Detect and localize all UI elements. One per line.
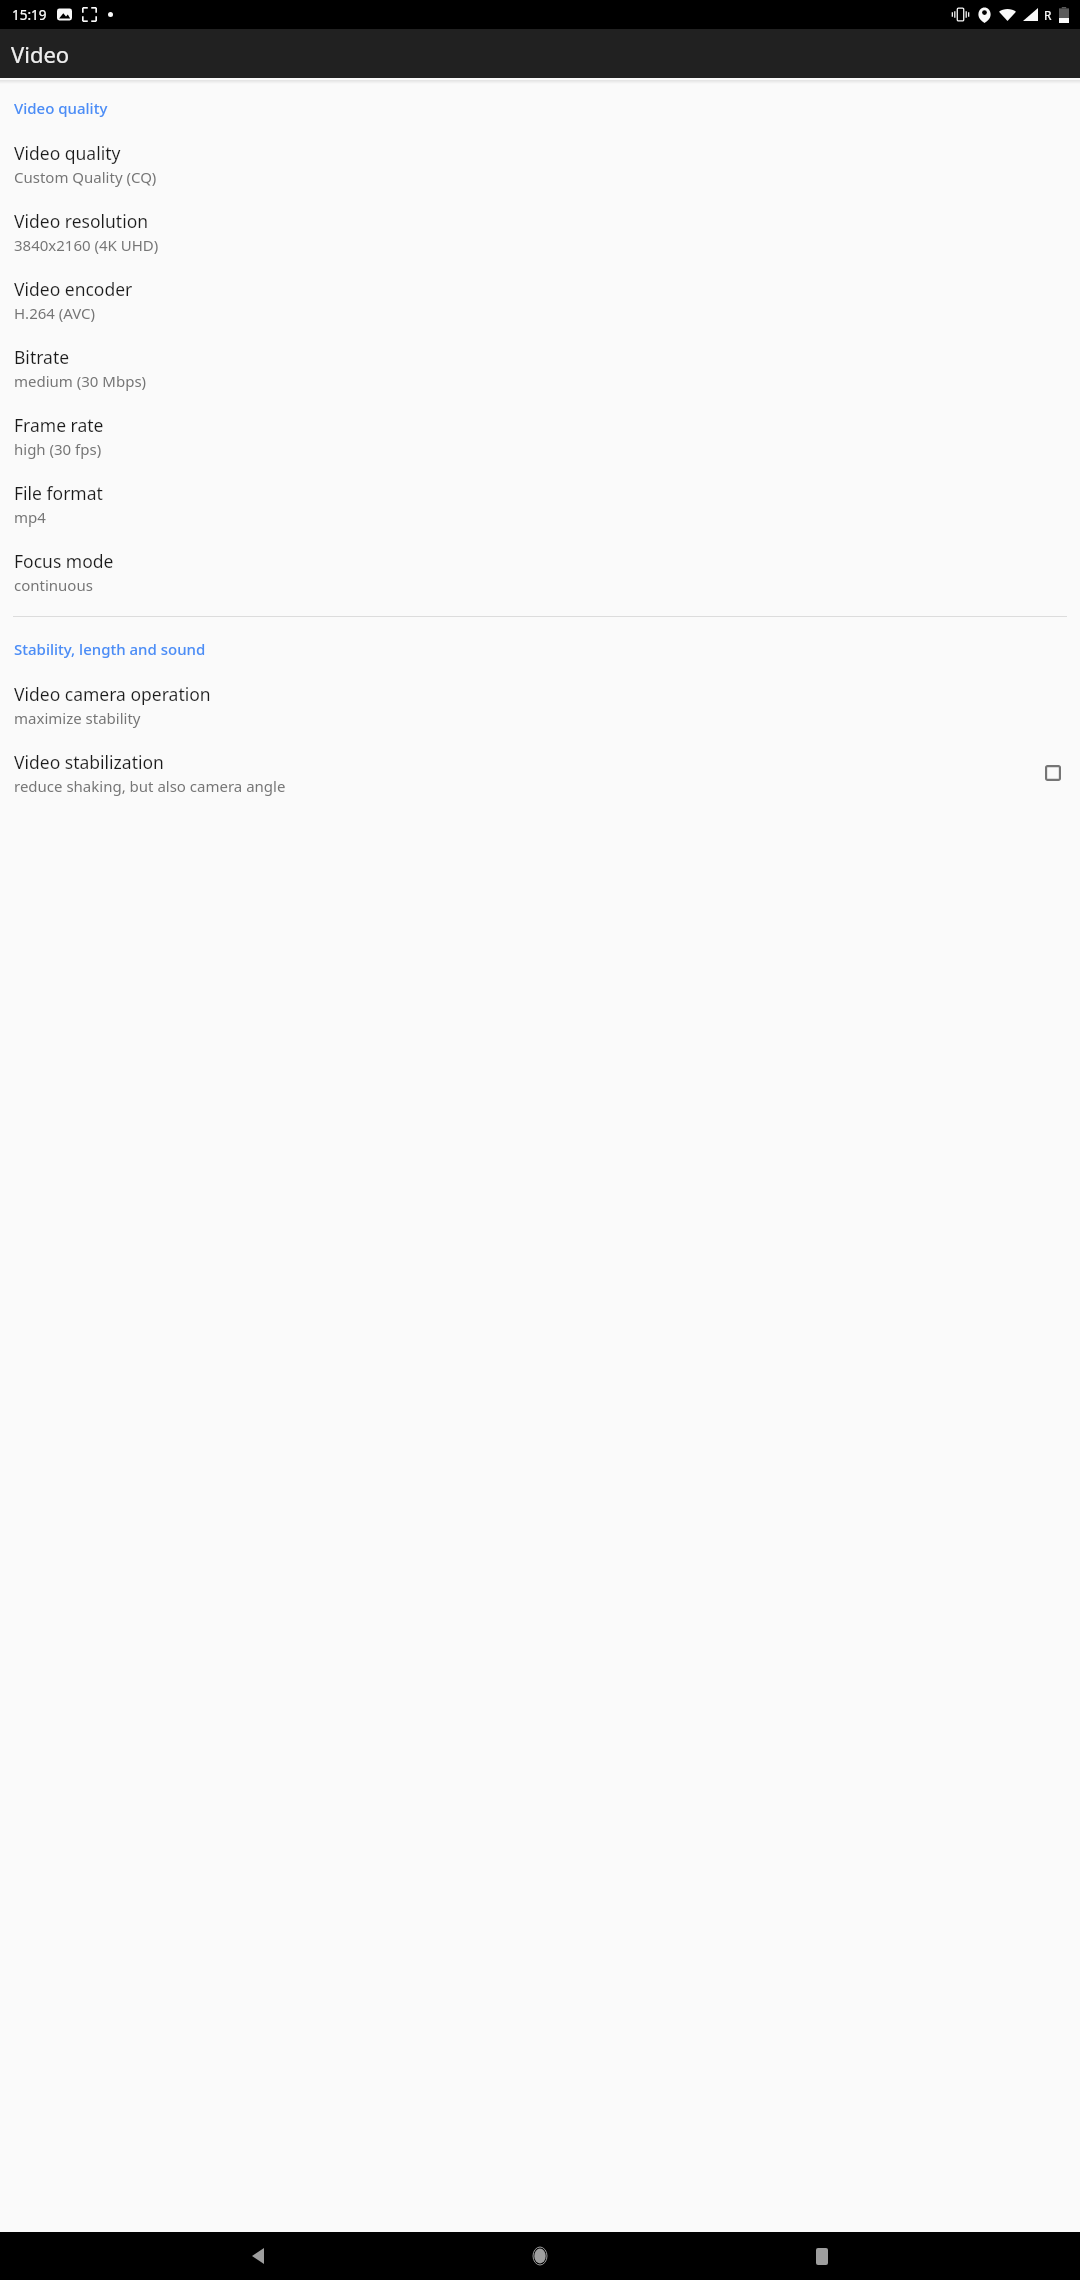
- staticText: Video encoder: [14, 277, 133, 301]
- button[interactable]: Bitrate: [0, 334, 1080, 402]
- staticText: Video quality: [14, 98, 108, 118]
- other: Video stabilization checkbox: [1040, 760, 1066, 786]
- staticText: Frame rate: [14, 413, 104, 437]
- staticText: Custom Quality (CQ): [14, 167, 157, 187]
- staticText: Stability, length and sound: [14, 639, 206, 659]
- button[interactable]: Recents: [798, 2232, 846, 2280]
- staticText: Video resolution: [14, 209, 149, 233]
- button[interactable]: Video resolution: [0, 198, 1080, 266]
- staticText: 15:19: [12, 6, 47, 24]
- staticText: mp4: [14, 507, 46, 527]
- staticText: Video: [11, 39, 70, 69]
- button[interactable]: Video quality: [0, 130, 1080, 198]
- staticText: R: [1044, 7, 1052, 23]
- button[interactable]: Frame rate: [0, 402, 1080, 470]
- staticText: Video quality: [14, 141, 121, 165]
- staticText: File format: [14, 481, 103, 505]
- button[interactable]: Video encoder: [0, 266, 1080, 334]
- staticText: Focus mode: [14, 549, 114, 573]
- button[interactable]: File format: [0, 470, 1080, 538]
- staticText: maximize stability: [14, 708, 141, 728]
- staticText: medium (30 Mbps): [14, 371, 147, 391]
- staticText: Video stabilization: [14, 750, 164, 774]
- button[interactable]: Back: [234, 2232, 282, 2280]
- staticText: H.264 (AVC): [14, 303, 96, 323]
- button[interactable]: Video stabilization: [0, 739, 1080, 807]
- staticText: reduce shaking, but also camera angle: [14, 776, 286, 796]
- staticText: high (30 fps): [14, 439, 102, 459]
- button[interactable]: Home: [516, 2232, 564, 2280]
- staticText: continuous: [14, 575, 93, 595]
- button[interactable]: Video camera operation: [0, 671, 1080, 739]
- button[interactable]: Focus mode: [0, 538, 1080, 606]
- staticText: 3840x2160 (4K UHD): [14, 235, 159, 255]
- staticText: Video camera operation: [14, 682, 211, 706]
- staticText: Bitrate: [14, 345, 70, 369]
